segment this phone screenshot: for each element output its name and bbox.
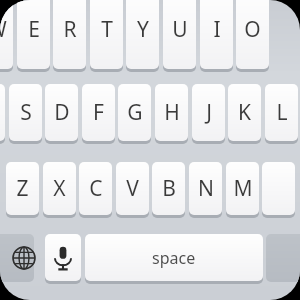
staticText: G	[127, 98, 143, 127]
button[interactable]: D	[45, 84, 78, 142]
button[interactable]: W	[0, 0, 13, 70]
button[interactable]: Key	[262, 162, 295, 216]
staticText: N	[198, 174, 214, 203]
staticText: E	[28, 15, 40, 44]
staticText: O	[244, 15, 261, 44]
button[interactable]: G	[118, 84, 151, 142]
staticText: Z	[16, 174, 29, 203]
button[interactable]: S	[9, 84, 42, 142]
staticText: I	[213, 15, 221, 44]
button[interactable]: V	[116, 162, 149, 216]
staticText: W	[0, 15, 7, 44]
button[interactable]: M	[226, 162, 259, 216]
staticText: Y	[137, 15, 149, 44]
staticText: R	[63, 15, 77, 44]
button[interactable]: O	[236, 0, 269, 70]
staticText: D	[54, 98, 70, 127]
staticText: X	[53, 174, 66, 203]
button[interactable]: Change keyboard language	[0, 234, 34, 282]
button[interactable]: R	[53, 0, 86, 70]
staticText: L	[276, 98, 288, 127]
button[interactable]: K	[228, 84, 261, 142]
staticText: H	[164, 98, 180, 127]
button[interactable]: H	[155, 84, 188, 142]
button[interactable]: C	[79, 162, 112, 216]
button[interactable]: I	[200, 0, 233, 70]
staticText: J	[206, 98, 212, 127]
button[interactable]: J	[192, 84, 225, 142]
staticText: V	[126, 174, 139, 203]
button[interactable]: N	[189, 162, 222, 216]
button[interactable]: Y	[126, 0, 159, 70]
staticText: space	[152, 247, 196, 269]
staticText: F	[93, 98, 104, 127]
button[interactable]: Voice input	[45, 234, 81, 282]
button[interactable]: space	[85, 234, 263, 282]
staticText: U	[172, 15, 188, 44]
staticText: B	[162, 174, 176, 203]
button[interactable]: U	[163, 0, 196, 70]
staticText: C	[89, 174, 103, 203]
button[interactable]: A	[0, 84, 5, 142]
staticText: M	[233, 174, 253, 203]
button[interactable]: T	[90, 0, 123, 70]
staticText: S	[20, 98, 32, 127]
button[interactable]: X	[43, 162, 76, 216]
button[interactable]: B	[152, 162, 185, 216]
staticText: T	[101, 15, 113, 44]
button[interactable]: Z	[6, 162, 39, 216]
button[interactable]: F	[82, 84, 115, 142]
button[interactable]: L	[265, 84, 298, 142]
button[interactable]: E	[17, 0, 50, 70]
button[interactable]: Return	[266, 234, 300, 282]
staticText: K	[238, 98, 251, 127]
